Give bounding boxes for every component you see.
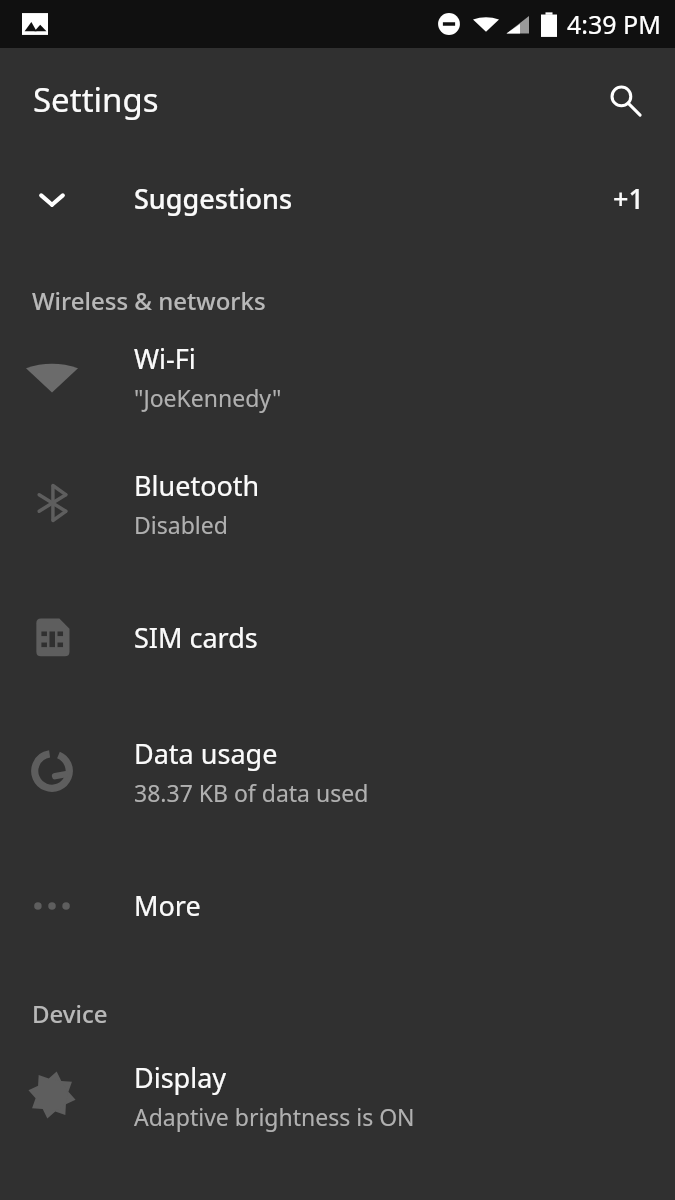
staticText: Display — [134, 1059, 227, 1096]
staticText: "JoeKennedy" — [134, 382, 282, 413]
staticText: Adaptive brightness is ON — [134, 1101, 415, 1132]
staticText: Wi-Fi — [134, 340, 196, 377]
button[interactable]: Search — [597, 72, 653, 128]
staticText: Disabled — [134, 509, 228, 540]
staticText: Data usage — [134, 735, 278, 772]
button[interactable]: Suggestions — [0, 151, 675, 246]
button[interactable]: Bluetooth — [0, 436, 675, 570]
button[interactable]: More — [0, 838, 675, 973]
button[interactable]: Wi-Fi — [0, 317, 675, 436]
staticText: More — [134, 887, 201, 924]
button[interactable]: Data usage — [0, 704, 675, 838]
staticText: SIM cards — [134, 619, 258, 656]
staticText: 4:39 PM — [567, 7, 661, 41]
staticText: 38.37 KB of data used — [134, 777, 369, 808]
staticText: Settings — [33, 77, 159, 122]
staticText: Device — [32, 997, 108, 1030]
button[interactable]: Display — [0, 1030, 675, 1160]
staticText: Wireless & networks — [32, 284, 266, 317]
staticText: Bluetooth — [134, 467, 260, 504]
staticText: Suggestions — [134, 180, 293, 217]
button[interactable]: SIM cards — [0, 570, 675, 704]
staticText: +1 — [613, 180, 644, 217]
